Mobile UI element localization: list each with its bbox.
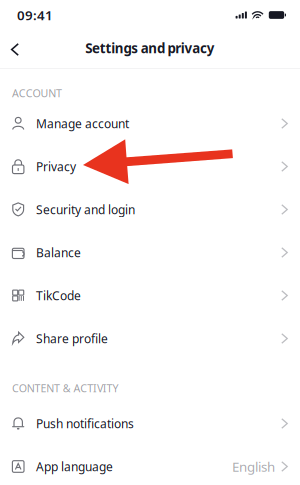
button[interactable]: Push notifications [0, 402, 300, 445]
button[interactable]: Balance [0, 231, 300, 274]
staticText: Privacy [36, 158, 76, 174]
button[interactable]: Security and login [0, 188, 300, 231]
button[interactable]: TikCode [0, 274, 300, 317]
staticText: English [232, 458, 275, 475]
button[interactable]: App language [0, 445, 300, 485]
staticText: ACCOUNT [12, 86, 62, 100]
staticText: TikCode [36, 287, 81, 303]
staticText: Share profile [36, 330, 108, 346]
staticText: 09:41 [17, 6, 53, 24]
staticText: Settings and privacy [85, 39, 215, 57]
staticText: App language [36, 458, 113, 474]
staticText: Security and login [36, 201, 135, 217]
staticText: Balance [36, 244, 81, 260]
button[interactable]: Privacy [0, 145, 300, 188]
staticText: Manage account [36, 115, 129, 131]
button[interactable]: Share profile [0, 317, 300, 360]
staticText: CONTENT & ACTIVITY [12, 381, 118, 395]
button[interactable]: Back [0, 33, 33, 63]
staticText: Push notifications [36, 415, 134, 431]
button[interactable]: Manage account [0, 102, 300, 145]
